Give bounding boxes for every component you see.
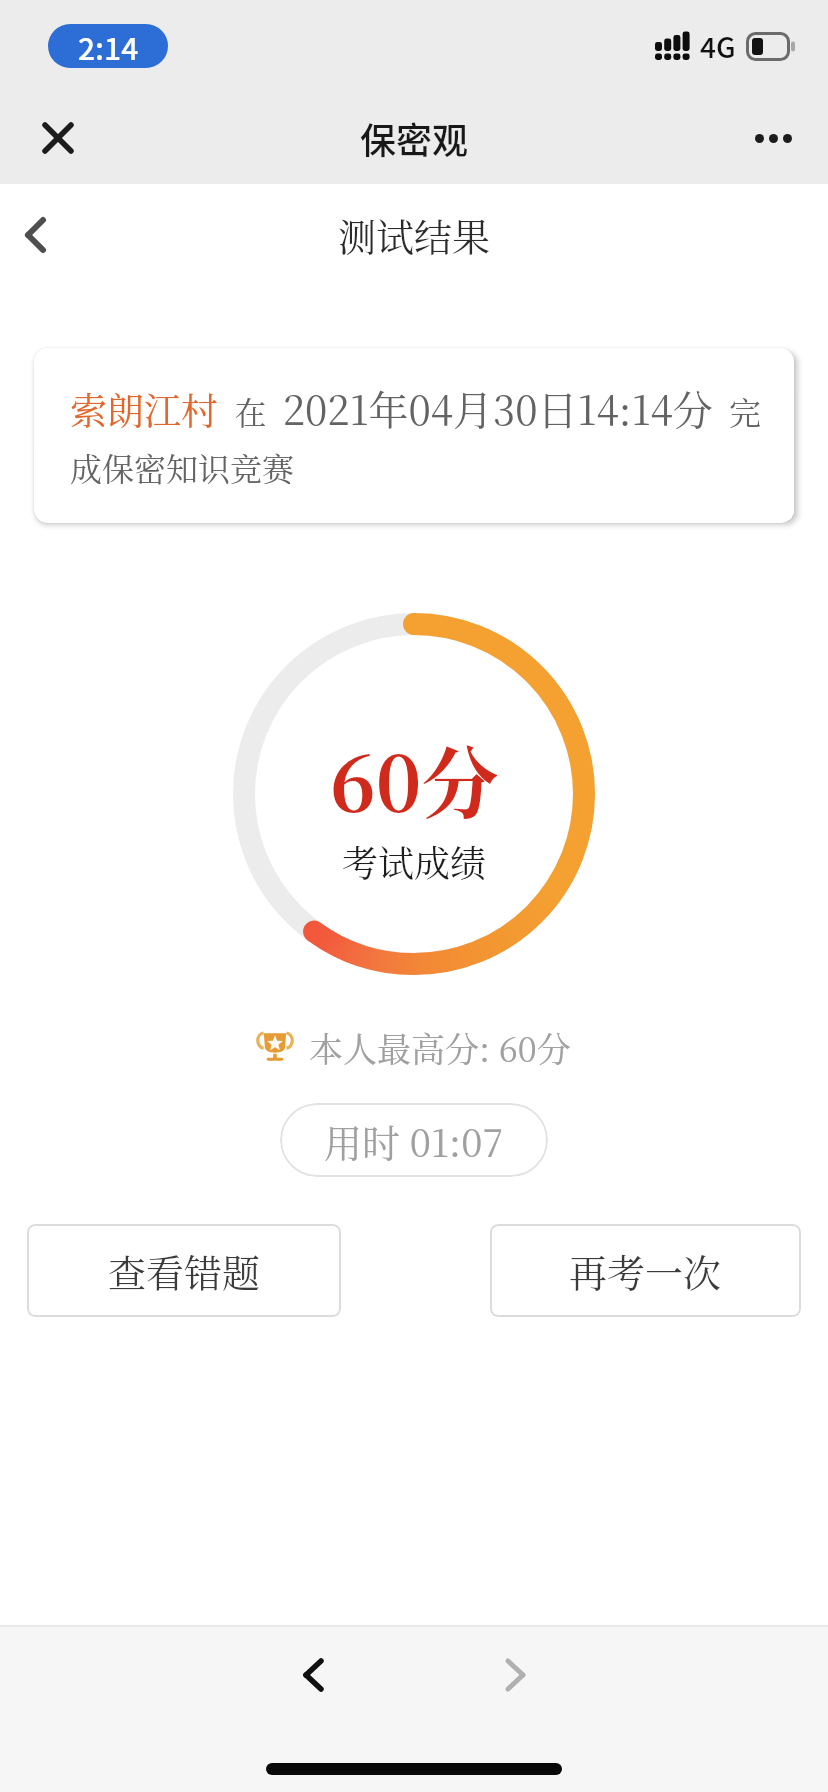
button[interactable]: 再考一次 — [490, 1224, 801, 1317]
staticText: 查看错题 — [108, 1243, 261, 1298]
button[interactable]: Navigate back — [267, 1629, 359, 1721]
staticText: 保密观 — [360, 112, 469, 164]
button[interactable]: Back — [3, 203, 67, 267]
staticText: 本人最高分: 60分 — [309, 1023, 571, 1072]
staticText: 再考一次 — [569, 1243, 722, 1298]
staticText: 考试成绩 — [342, 836, 487, 888]
staticText: 60分 — [330, 723, 499, 834]
staticText: 索朗江村 在 2021年04月30日14:14分 完 成保密知识竞赛 — [70, 379, 762, 490]
button[interactable]: 用时 01:07 — [280, 1103, 548, 1177]
button[interactable]: Close — [26, 106, 90, 170]
staticText: 测试结果 — [338, 207, 491, 262]
button[interactable]: More options — [740, 105, 806, 171]
staticText: 4G — [700, 26, 736, 67]
staticText: 用时 01:07 — [324, 1113, 504, 1168]
staticText: 2:14 — [78, 25, 139, 68]
button[interactable]: 查看错题 — [27, 1224, 341, 1317]
button[interactable]: Navigate forward — [469, 1629, 561, 1721]
